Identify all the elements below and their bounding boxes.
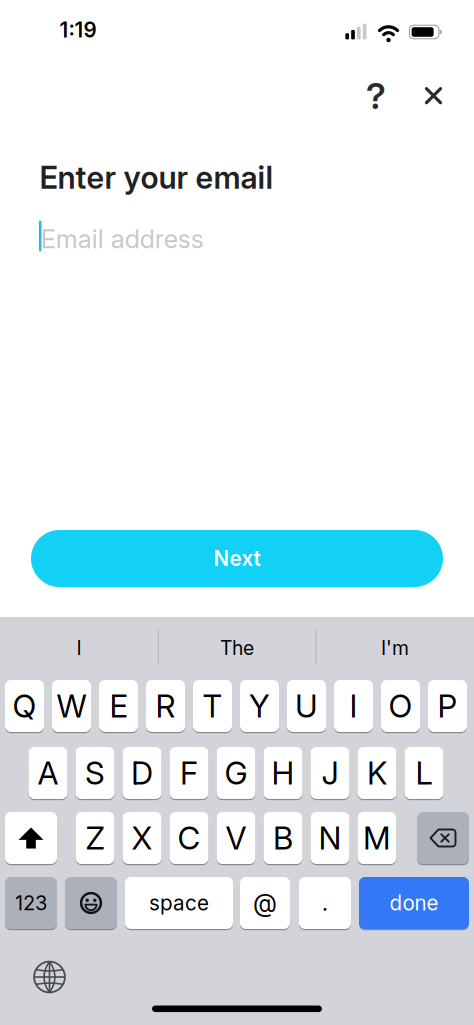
button[interactable]: The xyxy=(162,628,312,668)
button[interactable]: R xyxy=(146,679,185,733)
button[interactable]: Next xyxy=(31,530,443,587)
staticText: N xyxy=(318,819,341,857)
button[interactable]: V xyxy=(216,811,255,865)
button[interactable]: Next keyboard xyxy=(27,955,71,999)
button[interactable]: I xyxy=(334,679,373,733)
button[interactable]: T xyxy=(193,679,232,733)
button[interactable]: space xyxy=(125,876,233,930)
button[interactable]: Delete xyxy=(417,811,469,865)
staticText: T xyxy=(202,687,222,725)
staticText: E xyxy=(109,687,127,725)
button[interactable]: J xyxy=(310,746,349,800)
button[interactable]: M xyxy=(357,811,396,865)
button[interactable]: O xyxy=(381,679,420,733)
button[interactable]: S xyxy=(75,746,114,800)
staticText: F xyxy=(180,754,198,792)
staticText: . xyxy=(322,890,328,916)
button[interactable]: D xyxy=(122,746,161,800)
staticText: M xyxy=(363,819,391,857)
staticText: B xyxy=(273,819,293,857)
staticText: Y xyxy=(249,687,270,725)
button[interactable]: K xyxy=(357,746,396,800)
staticText: The xyxy=(220,636,254,660)
button[interactable]: B xyxy=(263,811,302,865)
button[interactable]: Numbers xyxy=(5,876,57,930)
staticText: R xyxy=(155,687,175,725)
staticText: L xyxy=(415,754,432,792)
button[interactable]: done xyxy=(359,876,469,930)
staticText: A xyxy=(37,754,58,792)
button[interactable]: Q xyxy=(5,679,44,733)
staticText: C xyxy=(177,819,200,857)
staticText: ? xyxy=(366,74,386,118)
staticText: X xyxy=(131,819,152,857)
button[interactable]: Shift xyxy=(5,811,57,865)
staticText: J xyxy=(321,754,338,792)
staticText: P xyxy=(437,687,457,725)
staticText: I'm xyxy=(381,636,409,660)
button[interactable]: N xyxy=(310,811,349,865)
button[interactable]: P xyxy=(428,679,467,733)
button[interactable]: . xyxy=(299,876,351,930)
button[interactable]: Z xyxy=(75,811,114,865)
staticText: 123 xyxy=(15,891,47,915)
staticText: I xyxy=(349,687,357,725)
button[interactable]: Emoji xyxy=(65,876,117,930)
staticText: Q xyxy=(12,687,36,725)
button[interactable]: I xyxy=(4,628,154,668)
staticText: @ xyxy=(253,888,277,918)
staticText: done xyxy=(389,890,438,915)
button[interactable]: X xyxy=(122,811,161,865)
button[interactable]: F xyxy=(169,746,208,800)
staticText: I xyxy=(76,636,81,660)
staticText: H xyxy=(271,754,294,792)
button[interactable]: Close xyxy=(411,74,455,118)
staticText: V xyxy=(225,819,246,857)
button[interactable]: Y xyxy=(240,679,279,733)
button[interactable]: I'm xyxy=(320,628,470,668)
staticText: Z xyxy=(85,819,104,857)
staticText: U xyxy=(295,687,318,725)
button[interactable]: W xyxy=(52,679,91,733)
staticText: S xyxy=(85,754,105,792)
button[interactable]: E xyxy=(99,679,138,733)
staticText: G xyxy=(224,754,247,792)
button[interactable]: H xyxy=(263,746,302,800)
staticText: Next xyxy=(213,546,260,571)
staticText: Email address xyxy=(41,224,204,254)
button[interactable]: A xyxy=(28,746,67,800)
staticText: 1:19 xyxy=(59,17,96,42)
staticText: D xyxy=(131,754,153,792)
staticText: W xyxy=(56,687,86,725)
staticText: space xyxy=(149,890,209,915)
button[interactable]: L xyxy=(404,746,443,800)
staticText: K xyxy=(367,754,387,792)
button[interactable]: Help xyxy=(354,74,398,118)
button[interactable]: U xyxy=(287,679,326,733)
staticText: Enter your email xyxy=(39,159,273,196)
button[interactable]: G xyxy=(216,746,255,800)
button[interactable]: C xyxy=(169,811,208,865)
button[interactable]: @ xyxy=(240,876,290,930)
staticText: O xyxy=(388,687,412,725)
